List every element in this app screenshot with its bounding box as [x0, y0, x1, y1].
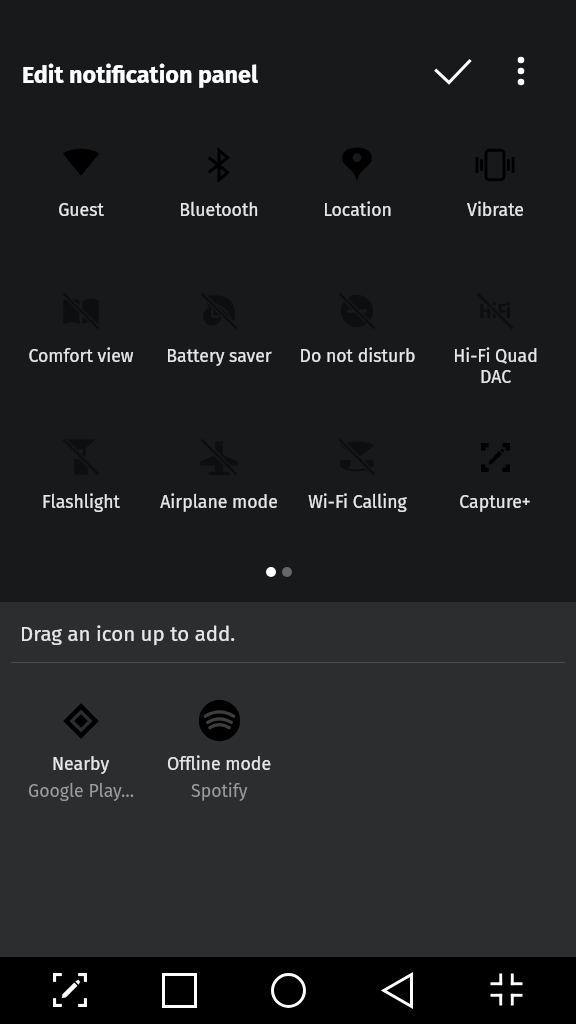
button[interactable]: Location	[288, 131, 426, 277]
button[interactable]: Do not disturb	[288, 277, 426, 423]
button[interactable]: Nearby	[12, 688, 150, 808]
staticText: Edit notification panel	[22, 61, 258, 89]
button[interactable]: Done	[423, 43, 479, 99]
button[interactable]: Airplane mode	[150, 423, 288, 569]
button[interactable]: Vibrate	[426, 131, 564, 277]
button[interactable]: Flashlight	[12, 423, 150, 569]
staticText: Wi-Fi Calling	[308, 491, 407, 512]
staticText: Hi-Fi Quad DAC	[453, 345, 538, 388]
button[interactable]: Home	[234, 957, 343, 1024]
staticText: Google Play…	[28, 780, 135, 801]
button[interactable]: Comfort view	[12, 277, 150, 423]
staticText: Comfort view	[28, 345, 134, 366]
staticText: Guest	[58, 199, 104, 220]
staticText: Do not disturb	[299, 345, 416, 366]
button[interactable]: Back	[343, 957, 452, 1024]
button[interactable]: Capture plus	[15, 957, 125, 1024]
button[interactable]: Recent apps	[125, 957, 234, 1024]
button[interactable]: More options	[493, 43, 549, 99]
staticText: Capture+	[459, 491, 531, 512]
button[interactable]: Guest	[12, 131, 150, 277]
staticText: Vibrate	[467, 199, 524, 220]
staticText: Offline mode	[167, 753, 272, 774]
button[interactable]: Battery saver	[150, 277, 288, 423]
staticText: Spotify	[191, 780, 248, 801]
staticText: Location	[323, 199, 392, 220]
button[interactable]: Capture+	[426, 423, 564, 569]
staticText: HiFi	[479, 300, 512, 323]
button[interactable]: Offline mode	[150, 688, 288, 808]
button[interactable]: Bluetooth	[150, 131, 288, 277]
staticText: Battery saver	[166, 345, 272, 366]
button[interactable]: HiFi	[426, 277, 564, 423]
button[interactable]: Hide navigation bar	[452, 957, 561, 1024]
staticText: Bluetooth	[179, 199, 259, 220]
staticText: Nearby	[52, 753, 110, 774]
staticText: Drag an icon up to add.	[20, 622, 236, 647]
staticText: Flashlight	[42, 491, 120, 512]
staticText: Airplane mode	[160, 491, 278, 512]
button[interactable]: Wi-Fi Calling	[288, 423, 426, 569]
